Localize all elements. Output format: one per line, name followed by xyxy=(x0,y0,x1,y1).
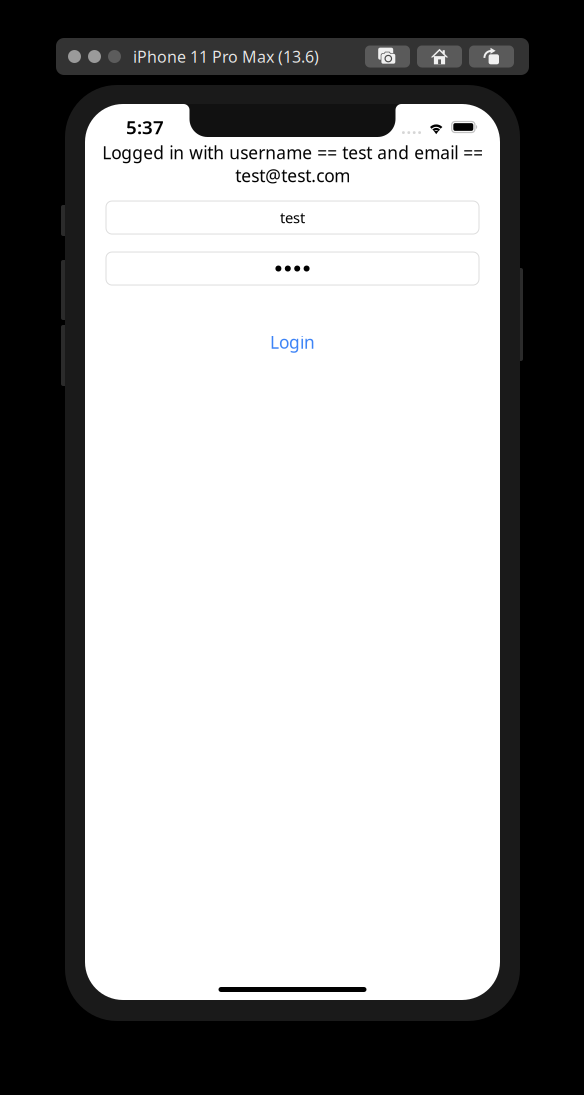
staticText: test xyxy=(280,208,305,227)
staticText: Logged in with username == test and emai… xyxy=(102,141,483,187)
button[interactable] xyxy=(106,252,479,285)
button[interactable]: test xyxy=(106,201,479,234)
staticText: Login xyxy=(270,330,315,353)
button[interactable]: Home xyxy=(417,45,462,67)
button[interactable]: Share xyxy=(469,45,514,67)
button[interactable]: Login xyxy=(270,330,315,354)
staticText: 5:37 xyxy=(126,115,164,139)
button[interactable]: Screenshot xyxy=(365,45,410,67)
staticText: iPhone 11 Pro Max (13.6) xyxy=(133,46,319,67)
